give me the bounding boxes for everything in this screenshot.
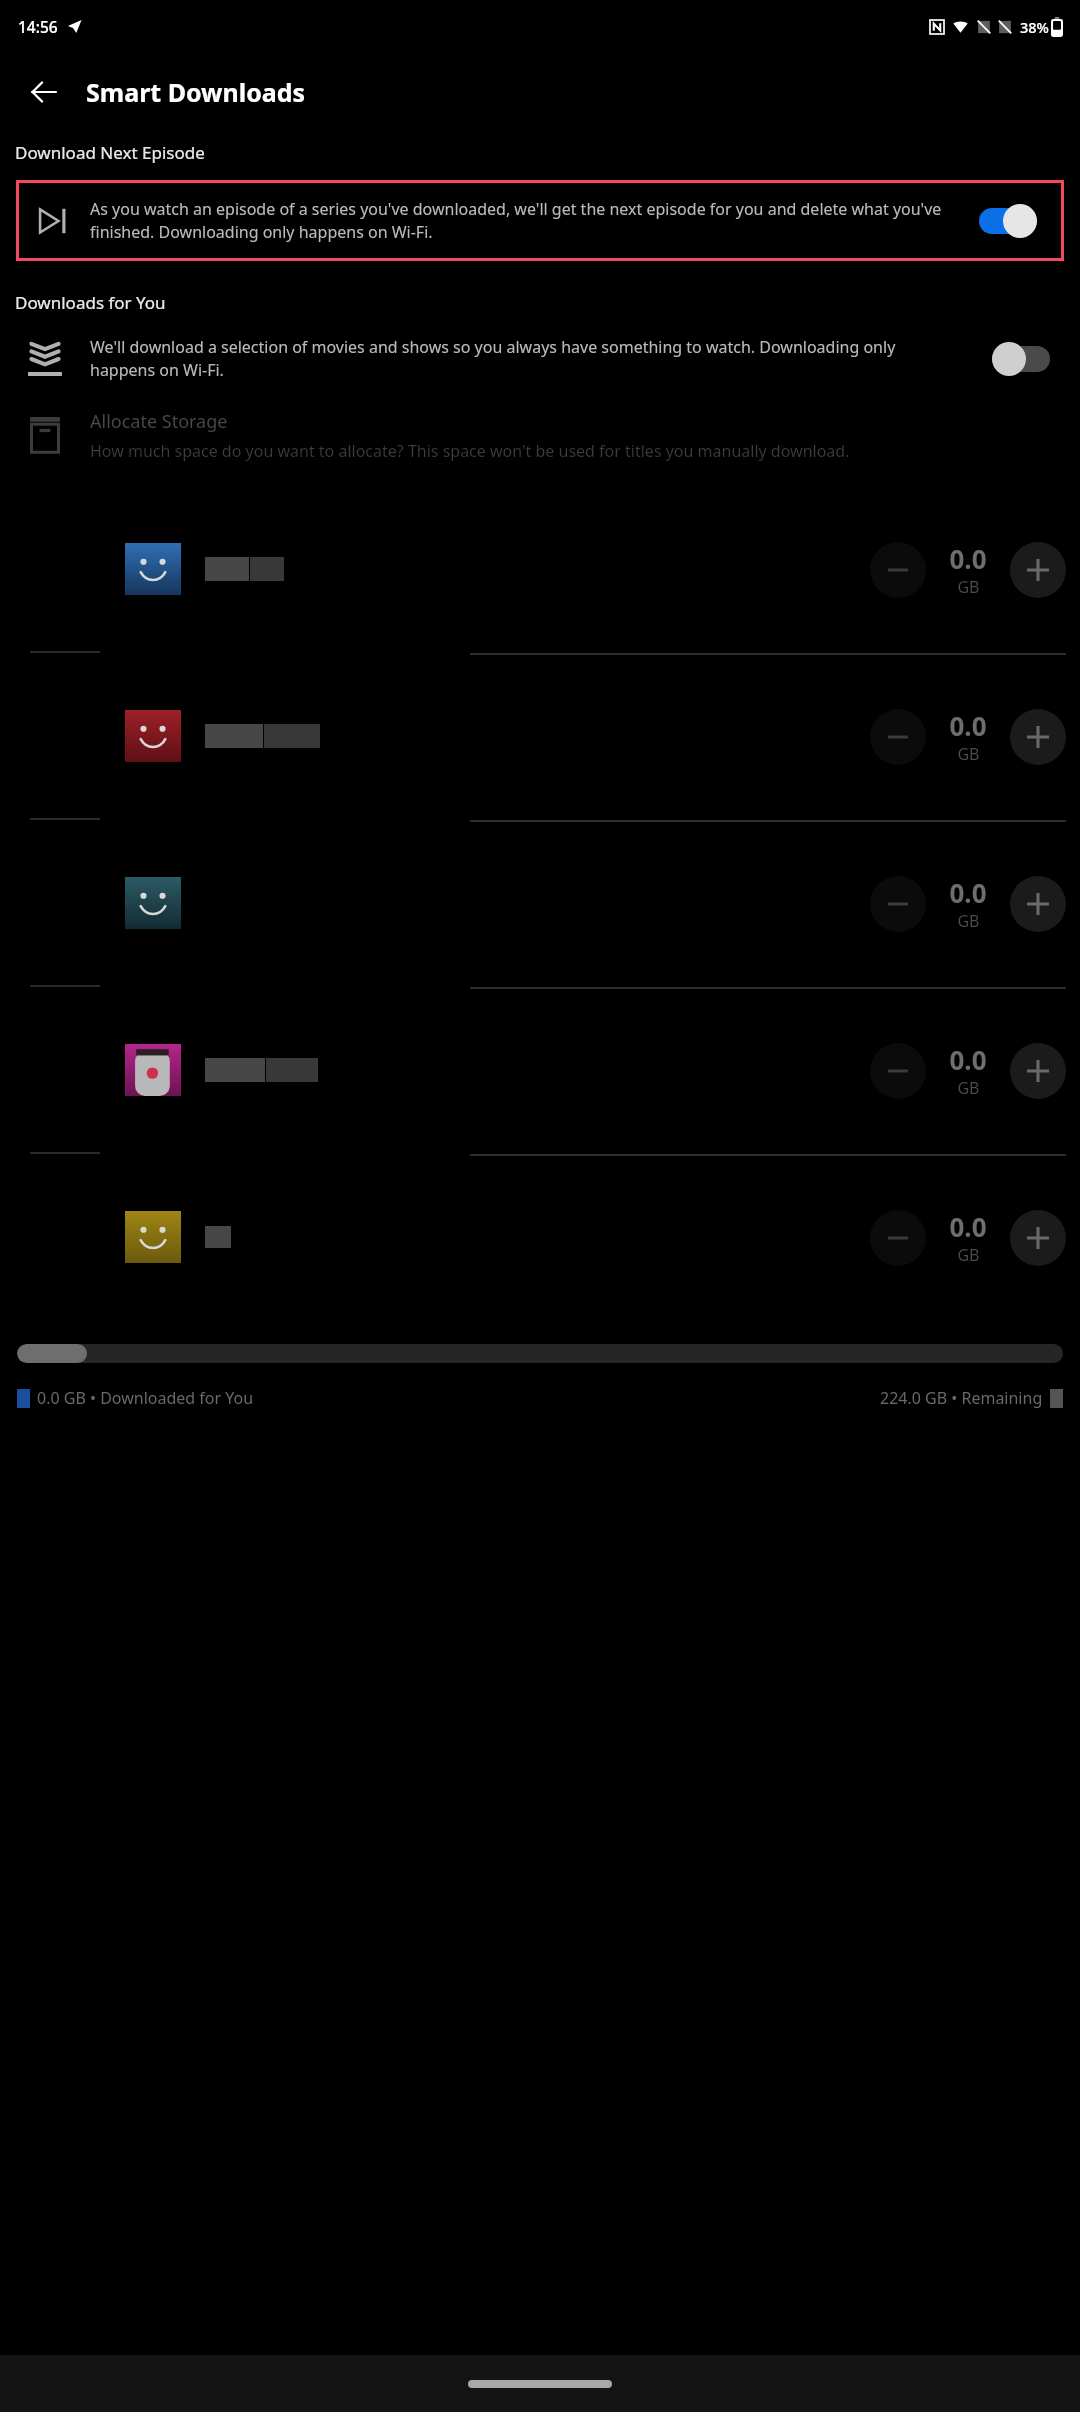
button[interactable]: Decrease [0, 655, 1080, 817]
staticText: 38% [1020, 17, 1049, 37]
staticText: GB [957, 576, 980, 598]
button[interactable]: Decrease [0, 1156, 1080, 1318]
staticText: GB [957, 743, 980, 765]
staticText: 224.0 GB • Remaining [880, 1387, 1043, 1409]
staticText: 0.0 [949, 1209, 987, 1244]
staticText: 0.0 [949, 1042, 987, 1077]
button[interactable]: Decrease [870, 542, 926, 598]
staticText: 0.0 [949, 708, 987, 743]
button[interactable]: Decrease [870, 1043, 926, 1099]
button[interactable]: Increase [1010, 1043, 1066, 1099]
staticText: 14:56 [18, 16, 58, 37]
staticText: GB [957, 1244, 980, 1266]
button[interactable]: Decrease [0, 822, 1080, 984]
staticText: As you watch an episode of a series you'… [90, 198, 952, 243]
staticText: Downloads for You [15, 291, 166, 314]
staticText: GB [957, 1077, 980, 1099]
button[interactable]: Decrease [870, 1210, 926, 1266]
staticText: 0.0 [949, 875, 987, 910]
staticText: We'll download a selection of movies and… [90, 336, 962, 381]
button[interactable]: Increase [1010, 542, 1066, 598]
staticText: Smart Downloads [86, 75, 306, 109]
staticText: Download Next Episode [15, 141, 205, 164]
staticText: How much space do you want to allocate? … [90, 440, 850, 462]
button[interactable]: Decrease [0, 989, 1080, 1151]
button[interactable]: Decrease [870, 709, 926, 765]
button[interactable]: Toggle on [979, 204, 1037, 238]
button[interactable]: Back [18, 66, 70, 118]
button[interactable]: Increase [1010, 876, 1066, 932]
staticText: 0.0 [949, 541, 987, 576]
button[interactable]: As you watch an episode of a series you'… [16, 180, 1064, 261]
button[interactable]: Home [468, 2380, 612, 2388]
button[interactable]: Increase [1010, 709, 1066, 765]
staticText: Allocate Storage [90, 409, 228, 434]
button[interactable]: We'll download a selection of movies and… [0, 336, 1080, 381]
button[interactable]: Decrease [0, 488, 1080, 650]
button[interactable]: Toggle off [992, 342, 1050, 376]
staticText: 0.0 GB • Downloaded for You [37, 1387, 254, 1409]
button[interactable]: Decrease [870, 876, 926, 932]
button[interactable]: Increase [1010, 1210, 1066, 1266]
staticText: GB [957, 910, 980, 932]
